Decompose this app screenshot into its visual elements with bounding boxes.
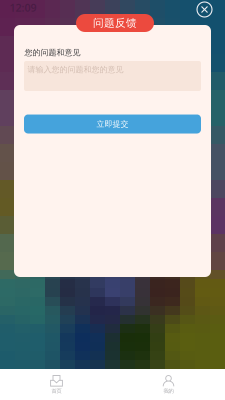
staticText: 您的问题和意见 <box>24 48 80 57</box>
staticText: 首页 <box>51 388 61 394</box>
button[interactable]: 立即提交 <box>24 114 201 133</box>
staticText: 问题反馈 <box>93 16 137 29</box>
button[interactable]: 首页 <box>0 369 112 400</box>
staticText: 我的 <box>163 388 173 394</box>
staticText: 立即提交 <box>96 119 128 129</box>
staticText: 12:09 <box>9 0 36 15</box>
button[interactable]: 问题反馈 <box>76 14 154 32</box>
button[interactable]: 我的 <box>112 369 224 400</box>
staticText: 请输入您的问题和您的意见 <box>27 65 123 74</box>
button[interactable]: Close <box>194 0 215 20</box>
